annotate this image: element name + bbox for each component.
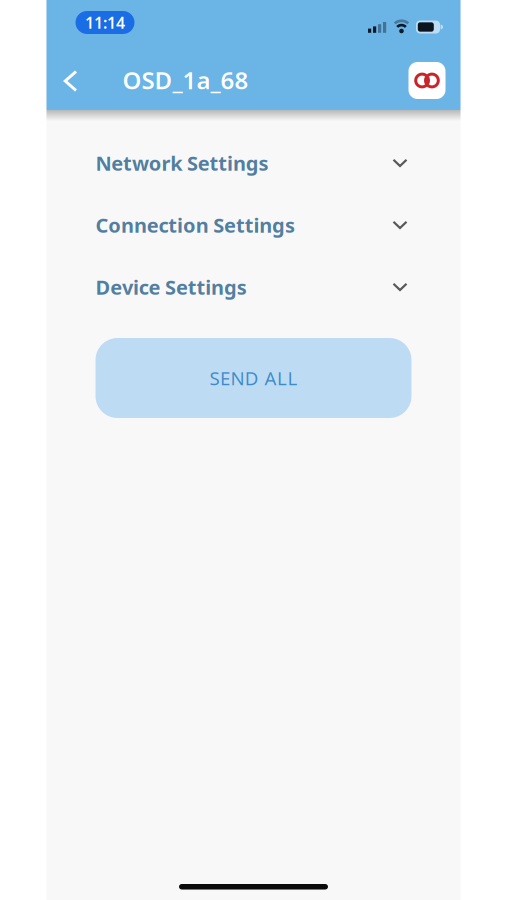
staticText: Network Settings	[95, 150, 268, 176]
button[interactable]: SEND ALL	[95, 338, 411, 418]
staticText: Connection Settings	[95, 212, 295, 238]
button[interactable]	[63, 69, 79, 92]
staticText: OSD_1a_68	[122, 64, 248, 96]
button[interactable]	[408, 62, 445, 99]
button[interactable]: Connection Settings	[46, 212, 460, 238]
button[interactable]: Network Settings	[46, 150, 460, 176]
staticText: 11:14	[85, 12, 125, 33]
button[interactable]: Device Settings	[46, 274, 460, 300]
staticText: SEND ALL	[210, 366, 297, 390]
staticText: Device Settings	[95, 274, 247, 300]
